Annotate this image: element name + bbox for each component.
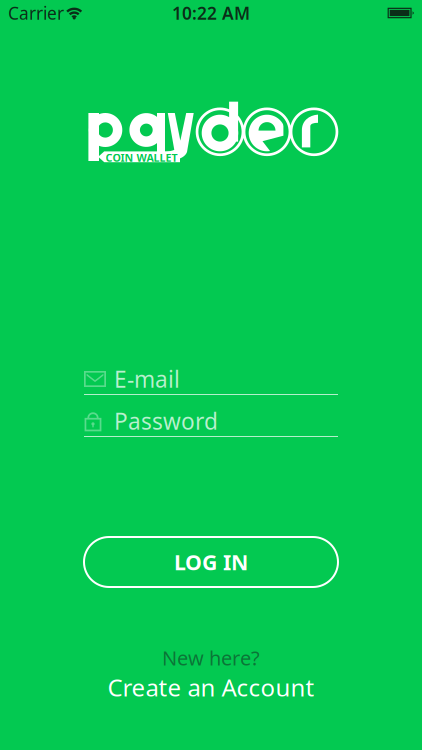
staticText: E-mail [114,364,180,394]
staticText: Password [114,406,218,436]
staticText: LOG IN [174,548,248,576]
staticText: Create an Account [107,671,314,703]
staticText: COIN WALLET [106,151,178,165]
button[interactable]: New here? [107,645,314,703]
button[interactable]: LOG IN [84,537,338,587]
staticText: New here? [162,645,260,671]
staticText: 10:22 AM [172,1,250,24]
staticText: Carrier [8,1,64,24]
